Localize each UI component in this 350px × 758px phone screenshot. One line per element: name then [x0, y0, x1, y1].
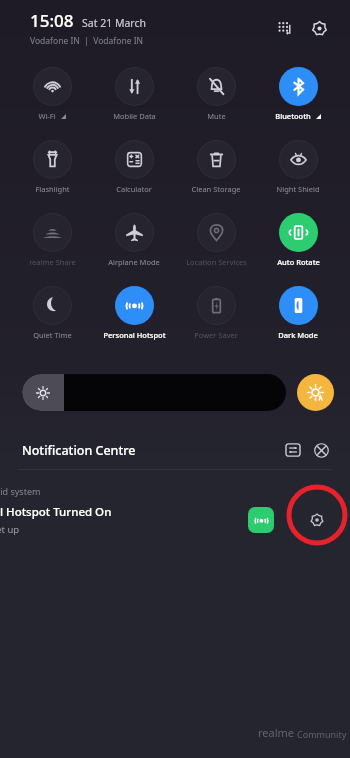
button[interactable]: Night Shield [258, 135, 338, 194]
staticText: Auto Rotate [277, 257, 320, 267]
button[interactable]: Mute [176, 62, 256, 121]
button[interactable]: Auto brightness [297, 374, 334, 411]
staticText: Location Services [186, 257, 247, 267]
button[interactable]: Personal Hotspot [248, 507, 274, 533]
button[interactable]: Power Saver [176, 281, 256, 340]
staticText: ...set up [0, 523, 20, 536]
button[interactable]: Brightness [22, 374, 286, 411]
button[interactable]: Wi-Fi [12, 62, 92, 121]
staticText: Community [297, 728, 347, 740]
button[interactable]: Quiet Time [12, 281, 92, 340]
button[interactable]: Auto Rotate [258, 208, 338, 267]
staticText: Airplane Mode [108, 257, 160, 267]
staticText: Vodafone IN | Vodafone IN [30, 35, 143, 47]
staticText: Night Shield [276, 184, 320, 194]
staticText: Flashlight [35, 184, 70, 194]
button[interactable]: Airplane Mode [94, 208, 174, 267]
button[interactable]: Flashlight [12, 135, 92, 194]
staticText: Sat 21 March [82, 16, 146, 30]
staticText: Mute [207, 111, 226, 121]
button[interactable]: Dark Mode [258, 281, 338, 340]
staticText: ...roid system [0, 485, 41, 497]
button[interactable]: Settings [306, 15, 332, 41]
staticText: Mobile Data [113, 111, 156, 121]
staticText: Calculator [116, 184, 152, 194]
staticText: Notification Centre [22, 442, 136, 459]
button[interactable]: Notification settings [280, 437, 306, 463]
staticText: Dark Mode [278, 330, 318, 340]
staticText: realme Share [29, 257, 76, 267]
button[interactable]: realme Share [12, 208, 92, 267]
button[interactable]: Location Services [176, 208, 256, 267]
staticText: 15:08 [30, 9, 74, 32]
button[interactable]: Clear all notifications [308, 437, 334, 463]
staticText: realme [258, 725, 295, 740]
button[interactable]: Mobile Data [94, 62, 174, 121]
button[interactable]: Calculator [94, 135, 174, 194]
staticText: Wi-Fi [38, 111, 56, 121]
staticText: Bluetooth [275, 111, 311, 121]
button[interactable]: Notification settings [304, 507, 330, 533]
staticText: Clean Storage [191, 184, 241, 194]
button[interactable]: Bluetooth [258, 62, 338, 121]
staticText: ...al Hotspot Turned On [0, 504, 112, 520]
staticText: Power Saver [194, 330, 238, 340]
button[interactable]: Edit tiles [272, 15, 298, 41]
staticText: Quiet Time [33, 330, 72, 340]
button[interactable]: Clean Storage [176, 135, 256, 194]
button[interactable]: Personal Hotspot [94, 281, 174, 340]
staticText: Personal Hotspot [103, 330, 166, 340]
